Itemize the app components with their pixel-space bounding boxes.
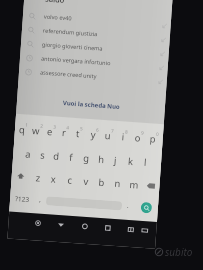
button[interactable]: f [62,144,79,169]
button[interactable]: t [71,121,88,146]
staticText: o [134,131,141,145]
button[interactable]: q [15,117,31,142]
button[interactable]: g [77,145,94,170]
button[interactable]: a [20,141,36,166]
staticText: saldo [45,0,65,5]
staticText: s [40,149,46,162]
staticText: antonio vergara infortunio [41,54,111,67]
staticText: i [121,130,125,143]
staticText: q [19,123,25,136]
button[interactable]: n [109,171,126,195]
staticText: referendum giustizia [43,26,98,38]
staticText: p [149,132,156,146]
button[interactable]: i [116,124,133,149]
staticText: c [67,174,73,187]
button[interactable]: Comma [33,188,47,211]
button[interactable]: m [125,173,142,196]
button[interactable]: u [101,123,118,148]
button[interactable]: w [29,118,45,143]
staticText: g [83,152,90,165]
button[interactable]: Hide keyboard [137,223,152,237]
button[interactable]: Shift [11,165,30,188]
button[interactable]: Split screen [123,222,138,236]
staticText: k [128,155,134,168]
button[interactable]: z [29,166,46,189]
staticText: x [50,172,57,186]
staticText: v [83,175,89,188]
button[interactable]: Home [77,218,92,233]
staticText: 5 [80,125,83,132]
button[interactable]: x [45,167,62,190]
staticText: 3 [53,123,56,130]
staticText: assessore creed unity [40,68,97,80]
staticText: u [104,129,111,142]
button[interactable]: Space [46,196,122,210]
staticText: volvo ev40 [44,13,72,22]
button[interactable]: Rotate [30,215,45,230]
staticText: h [98,153,105,166]
staticText: j [114,154,118,167]
staticText: 4 [66,124,69,131]
button[interactable]: giorgio gioverti cinema [21,36,169,60]
staticText: 2 [40,123,43,129]
staticText: t [75,127,80,140]
button[interactable]: e [43,119,59,144]
staticText: l [144,156,147,169]
button[interactable]: volvo ev40 [22,8,171,32]
staticText: ?123 [15,194,29,204]
staticText: y [90,128,96,141]
staticText: . [127,201,129,211]
button[interactable]: p [146,126,162,151]
button[interactable]: Backspace [141,174,160,197]
staticText: 8 [125,128,128,135]
staticText: r [61,126,66,139]
staticText: e [46,125,53,138]
button[interactable]: d [48,143,64,168]
staticText: 0 [156,131,159,137]
button[interactable]: v [77,169,94,192]
staticText: n [114,177,121,190]
button[interactable]: saldo [24,0,173,12]
button[interactable]: referendum giustizia [22,22,170,46]
staticText: giorgio gioverti cinema [42,40,103,53]
button[interactable]: Recents [100,220,115,235]
staticText: w [31,124,40,137]
staticText: m [129,178,139,191]
button[interactable]: Back [53,217,68,232]
staticText: f [69,151,74,164]
button[interactable]: o [131,125,147,150]
button[interactable]: c [61,168,78,191]
button[interactable]: Period [121,194,135,217]
staticText: , [39,195,41,205]
button[interactable]: s [34,142,50,167]
staticText: d [53,149,60,163]
button[interactable]: antonio vergara infortunio [20,50,168,74]
button[interactable]: Search [140,202,152,213]
staticText: 9 [141,130,144,136]
button[interactable]: Vuoi la scheda Nuo [17,93,165,116]
button[interactable]: ?123 [9,187,35,210]
button[interactable]: h [92,146,109,171]
staticText: b [98,176,105,189]
button[interactable]: k [122,148,139,173]
button[interactable]: assessore creed unity [19,64,167,88]
button[interactable]: l [137,149,154,174]
button[interactable]: r [57,120,73,145]
staticText: a [25,148,32,161]
staticText: z [35,171,41,185]
staticText: 1 [25,121,29,128]
button[interactable]: j [107,147,124,172]
staticText: 6 [96,126,99,133]
staticText: subito [165,245,193,259]
staticText: Vuoi la scheda Nuo [63,99,120,111]
button[interactable]: b [93,170,110,193]
staticText: 7 [111,127,114,134]
button[interactable]: y [86,122,103,147]
